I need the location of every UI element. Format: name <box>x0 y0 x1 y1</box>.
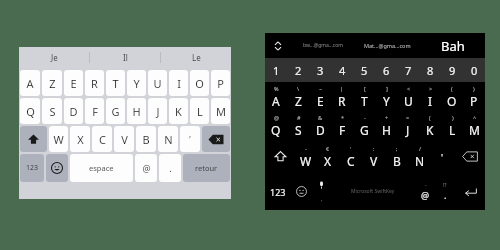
staticText: I <box>428 93 433 109</box>
button[interactable]: Emoji <box>46 154 68 182</box>
button[interactable]: @ <box>265 111 287 140</box>
button[interactable]: Backspace <box>202 126 230 152</box>
button[interactable]: ] <box>375 82 397 111</box>
button[interactable]: = <box>397 111 419 140</box>
button[interactable]: U <box>148 70 167 96</box>
button[interactable]: V <box>114 126 134 152</box>
button[interactable]: D <box>64 98 83 124</box>
button[interactable]: ^ <box>463 111 485 140</box>
staticText: M <box>469 122 480 138</box>
button[interactable]: # <box>287 111 309 140</box>
button[interactable]: O <box>190 70 209 96</box>
button[interactable]: R <box>85 70 104 96</box>
button[interactable]: C <box>92 126 112 152</box>
button[interactable]: A <box>20 70 40 96</box>
button[interactable]: Mat...@gma...com <box>355 33 420 58</box>
staticText: Il <box>123 52 128 63</box>
button[interactable]: ' <box>339 140 362 173</box>
button[interactable]: Emoji <box>291 173 311 210</box>
staticText: * <box>341 114 345 121</box>
staticText: D <box>69 104 78 119</box>
button[interactable]: ~ <box>309 82 331 111</box>
staticText: T <box>361 93 368 109</box>
button[interactable]: - <box>353 111 375 140</box>
button[interactable]: % <box>265 82 287 111</box>
button[interactable]: . <box>159 154 181 182</box>
button[interactable]: 5 <box>353 58 375 82</box>
button[interactable]: - <box>415 173 435 210</box>
button[interactable]: 7 <box>397 58 419 82</box>
button[interactable]: L <box>190 98 209 124</box>
button[interactable]: retour <box>183 154 230 182</box>
button[interactable]: Z <box>42 70 62 96</box>
staticText: T <box>112 76 119 91</box>
staticText: ' <box>441 151 444 163</box>
button[interactable]: * <box>331 111 353 140</box>
button[interactable]: Il <box>90 47 160 68</box>
button[interactable]: Je <box>19 47 89 68</box>
button[interactable]: P <box>211 70 230 96</box>
button[interactable]: Enter <box>455 173 485 210</box>
button[interactable]: !? <box>435 173 455 210</box>
button[interactable]: & <box>309 111 331 140</box>
button[interactable]: Microsoft SwiftKey <box>331 173 415 210</box>
button[interactable]: Bah <box>420 33 485 58</box>
button[interactable]: 6 <box>375 58 397 82</box>
button[interactable]: ' <box>431 140 454 173</box>
button[interactable]: + <box>375 111 397 140</box>
button[interactable]: ’ <box>180 126 200 152</box>
button[interactable]: 123 <box>20 154 44 182</box>
button[interactable]: 0 <box>463 58 485 82</box>
button[interactable]: X <box>70 126 90 152</box>
button[interactable]: [ <box>353 82 375 111</box>
button[interactable]: W <box>49 126 68 152</box>
button[interactable]: ) <box>463 82 485 111</box>
button[interactable]: Y <box>127 70 146 96</box>
button[interactable]: ) <box>441 111 463 140</box>
button[interactable]: T <box>106 70 125 96</box>
button[interactable]: > <box>419 82 441 111</box>
button[interactable]: G <box>106 98 125 124</box>
button[interactable]: Q <box>20 98 40 124</box>
button[interactable]: I <box>169 70 188 96</box>
button[interactable]: | <box>331 82 353 111</box>
button[interactable]: bw...@gma...com <box>291 33 355 58</box>
button[interactable]: @ <box>135 154 157 182</box>
button[interactable]: J <box>148 98 167 124</box>
button[interactable]: espace <box>70 154 133 182</box>
button[interactable]: Backspace <box>454 140 485 173</box>
button[interactable]: 2 <box>287 58 309 82</box>
button[interactable]: 4 <box>331 58 353 82</box>
button[interactable]: 3 <box>309 58 331 82</box>
button[interactable]: Shift <box>20 126 47 152</box>
button[interactable]: 9 <box>441 58 463 82</box>
button[interactable]: ( <box>441 82 463 111</box>
button[interactable]: 8 <box>419 58 441 82</box>
button[interactable]: S <box>42 98 62 124</box>
button[interactable]: ( <box>419 111 441 140</box>
button[interactable]: N <box>158 126 178 152</box>
staticText: Mat...@gma...com <box>364 42 411 49</box>
button[interactable]: E <box>64 70 83 96</box>
button[interactable]: M <box>211 98 230 124</box>
button[interactable]: Expand toolbar <box>265 33 291 58</box>
staticText: Z <box>49 76 56 91</box>
button[interactable]: - <box>295 140 317 173</box>
button[interactable]: < <box>397 82 419 111</box>
button[interactable]: H <box>127 98 146 124</box>
button[interactable]: B <box>136 126 156 152</box>
button[interactable]: 123 <box>265 173 291 210</box>
button[interactable]: ; <box>385 140 408 173</box>
button[interactable]: Le <box>161 47 231 68</box>
staticText: X <box>324 153 332 169</box>
button[interactable]: 1 <box>265 58 287 82</box>
staticText: retour <box>195 163 218 173</box>
button[interactable]: K <box>169 98 188 124</box>
button[interactable]: \ <box>287 82 309 111</box>
button[interactable]: Shift <box>265 140 295 173</box>
button[interactable]: Voice input <box>311 173 331 210</box>
button[interactable]: F <box>85 98 104 124</box>
button[interactable]: : <box>362 140 385 173</box>
button[interactable]: / <box>408 140 431 173</box>
button[interactable]: € <box>317 140 339 173</box>
